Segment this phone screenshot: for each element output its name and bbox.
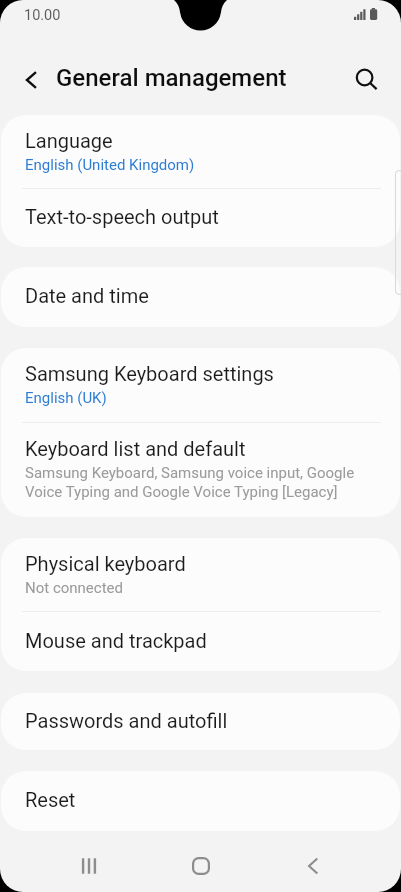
button[interactable]: Date and time bbox=[1, 267, 400, 327]
button[interactable]: Keyboard list and default bbox=[1, 423, 400, 517]
staticText: Text-to-speech output bbox=[25, 207, 219, 229]
button[interactable]: Navigate up bbox=[10, 58, 54, 102]
button[interactable]: Samsung Keyboard settings bbox=[1, 348, 400, 423]
button[interactable]: Mouse and trackpad bbox=[1, 612, 400, 671]
staticText: Passwords and autofill bbox=[25, 711, 228, 733]
button[interactable]: Recent apps bbox=[61, 838, 117, 892]
button[interactable]: Home bbox=[173, 838, 229, 892]
button[interactable]: Search bbox=[345, 58, 389, 102]
button[interactable]: Passwords and autofill bbox=[1, 693, 400, 750]
staticText: Language bbox=[25, 131, 113, 153]
staticText: Samsung Keyboard, Samsung voice input, G… bbox=[25, 463, 355, 501]
button[interactable]: Physical keyboard bbox=[1, 538, 400, 612]
staticText: Not connected bbox=[25, 578, 123, 597]
staticText: Samsung Keyboard settings bbox=[25, 364, 274, 386]
staticText: English (UK) bbox=[25, 388, 107, 407]
button[interactable]: Back bbox=[285, 838, 341, 892]
staticText: Reset bbox=[25, 790, 76, 812]
staticText: General management bbox=[56, 64, 287, 92]
staticText: English (United Kingdom) bbox=[25, 155, 195, 174]
staticText: 10.00 bbox=[24, 7, 61, 24]
button[interactable]: Reset bbox=[1, 771, 400, 831]
button[interactable]: Text-to-speech output bbox=[1, 189, 400, 247]
button[interactable]: Language bbox=[1, 115, 400, 189]
staticText: Physical keyboard bbox=[25, 554, 186, 576]
staticText: Date and time bbox=[25, 286, 149, 308]
staticText: Keyboard list and default bbox=[25, 439, 246, 461]
staticText: Mouse and trackpad bbox=[25, 631, 207, 653]
